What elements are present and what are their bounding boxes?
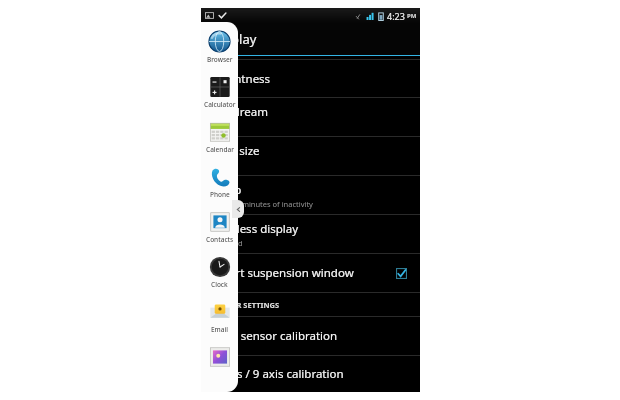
button[interactable]: Phone xyxy=(201,161,238,206)
staticText: 6 axis / 9 axis calibration xyxy=(212,366,344,382)
staticText: Font size xyxy=(212,143,260,159)
button[interactable]: Contacts xyxy=(201,206,238,251)
staticText: Brightness xyxy=(212,71,271,87)
button[interactable]: Brightness xyxy=(201,60,420,98)
staticText: Off xyxy=(212,121,224,131)
button[interactable]: Calculator xyxy=(201,71,238,116)
button[interactable]: Close drawer xyxy=(232,200,244,218)
staticText: Gyro sensor calibration xyxy=(212,328,338,344)
staticText: After 10 minutes of inactivity xyxy=(212,199,313,209)
button[interactable]: Email xyxy=(201,296,238,341)
staticText: SENSOR SETTINGS xyxy=(212,300,280,310)
staticText: Email xyxy=(211,325,229,334)
button[interactable]: 6 axis / 9 axis calibration xyxy=(201,356,420,392)
button[interactable]: Clock xyxy=(201,251,238,296)
staticText: PM xyxy=(407,12,417,20)
staticText: Contacts xyxy=(206,235,234,244)
staticText: Calculator xyxy=(204,100,236,109)
staticText: Disabled xyxy=(212,238,243,248)
button[interactable]: Smart suspension window xyxy=(201,254,420,293)
staticText: Wireless display xyxy=(212,221,299,237)
staticText: Display xyxy=(212,30,257,48)
button[interactable]: Browser xyxy=(201,26,238,71)
button[interactable]: Sleep xyxy=(201,176,420,215)
staticText: Browser xyxy=(207,55,233,64)
button[interactable]: Font size xyxy=(201,137,420,176)
button[interactable]: Display xyxy=(201,23,420,55)
staticText: 4:23 xyxy=(387,10,405,22)
button[interactable]: Wireless display xyxy=(201,215,420,254)
staticText: Phone xyxy=(210,190,230,199)
button[interactable]: Gallery xyxy=(201,341,238,381)
button[interactable]: Calendar xyxy=(201,116,238,161)
staticText: Clock xyxy=(211,280,228,289)
staticText: Sleep xyxy=(212,182,242,198)
staticText: Smart suspension window xyxy=(212,265,396,281)
button[interactable]: Daydream xyxy=(201,98,420,137)
staticText: Normal xyxy=(212,160,239,170)
button[interactable]: Gyro sensor calibration xyxy=(201,317,420,356)
staticText: Daydream xyxy=(212,104,268,120)
staticText: Calendar xyxy=(206,145,234,154)
